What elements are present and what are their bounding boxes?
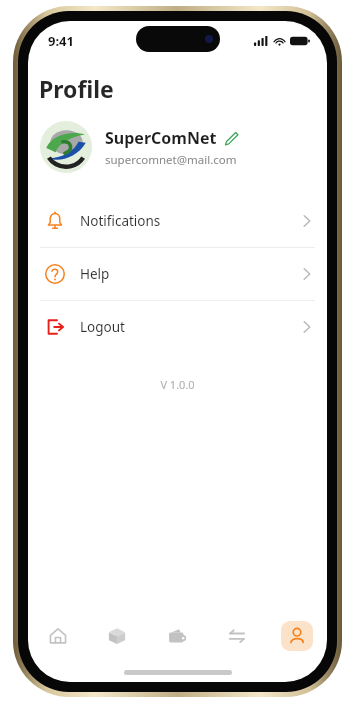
staticText: Notifications: [80, 212, 303, 230]
staticText: 9:41: [48, 32, 74, 50]
staticText: V 1.0.0: [28, 377, 327, 392]
staticText: Profile: [39, 73, 114, 104]
button[interactable]: Edit name: [224, 131, 239, 146]
staticText: Help: [80, 265, 303, 283]
button[interactable]: Home: [28, 610, 87, 662]
button[interactable]: SuperComNet: [28, 121, 327, 173]
button[interactable]: Logout: [28, 301, 327, 353]
button[interactable]: Packages: [87, 610, 147, 662]
button[interactable]: Help: [28, 248, 327, 300]
button[interactable]: Profile: [267, 610, 327, 662]
button[interactable]: Wallet: [147, 610, 207, 662]
button[interactable]: Transfers: [207, 610, 267, 662]
staticText: supercomnet@mail.com: [105, 152, 237, 168]
staticText: Logout: [80, 318, 303, 336]
button[interactable]: Notifications: [28, 195, 327, 247]
staticText: SuperComNet: [105, 127, 217, 149]
